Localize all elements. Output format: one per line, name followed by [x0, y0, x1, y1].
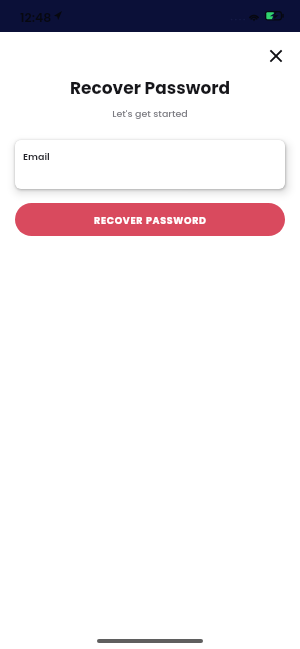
staticText: 12:48 — [20, 9, 52, 26]
staticText: Let's get started — [0, 107, 300, 120]
button[interactable]: Email — [15, 140, 285, 189]
staticText: RECOVER PASSWORD — [94, 214, 207, 227]
button[interactable]: RECOVER PASSWORD — [15, 203, 285, 236]
staticText: Email — [23, 150, 50, 163]
button[interactable]: Close — [263, 43, 288, 68]
staticText: Recover Password — [0, 76, 300, 100]
